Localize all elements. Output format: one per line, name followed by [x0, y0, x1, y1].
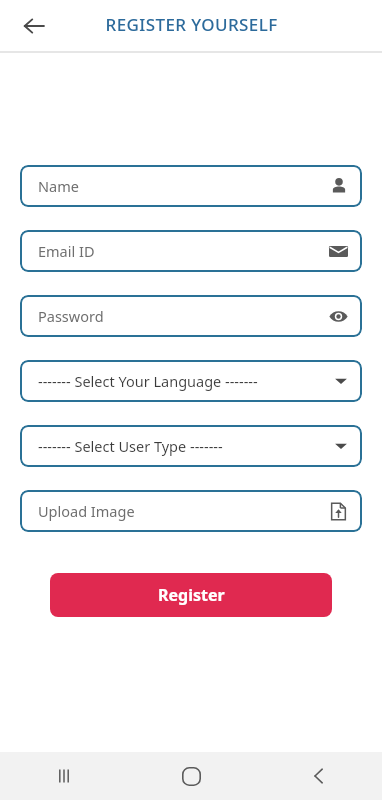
button[interactable]: ------- Select User Type -------	[20, 425, 362, 467]
button[interactable]: Email ID	[20, 230, 362, 272]
staticText: Register	[158, 584, 225, 606]
button[interactable]: Back	[12, 4, 56, 48]
staticText: Password	[38, 306, 329, 326]
button[interactable]: Recent apps	[0, 752, 128, 800]
button[interactable]: ------- Select Your Language -------	[20, 360, 362, 402]
button[interactable]: Home	[128, 752, 255, 800]
staticText: Upload Image	[38, 501, 329, 521]
button[interactable]: Upload Image	[20, 490, 362, 532]
button[interactable]: Password	[20, 295, 362, 337]
button[interactable]: Back	[255, 752, 382, 800]
staticText: ------- Select Your Language -------	[38, 371, 334, 391]
staticText: Name	[38, 176, 330, 196]
button[interactable]: Name	[20, 165, 362, 207]
staticText: Email ID	[38, 241, 329, 261]
staticText: REGISTER YOURSELF	[105, 13, 278, 36]
button[interactable]: Register	[50, 573, 332, 617]
staticText: ------- Select User Type -------	[38, 436, 334, 456]
